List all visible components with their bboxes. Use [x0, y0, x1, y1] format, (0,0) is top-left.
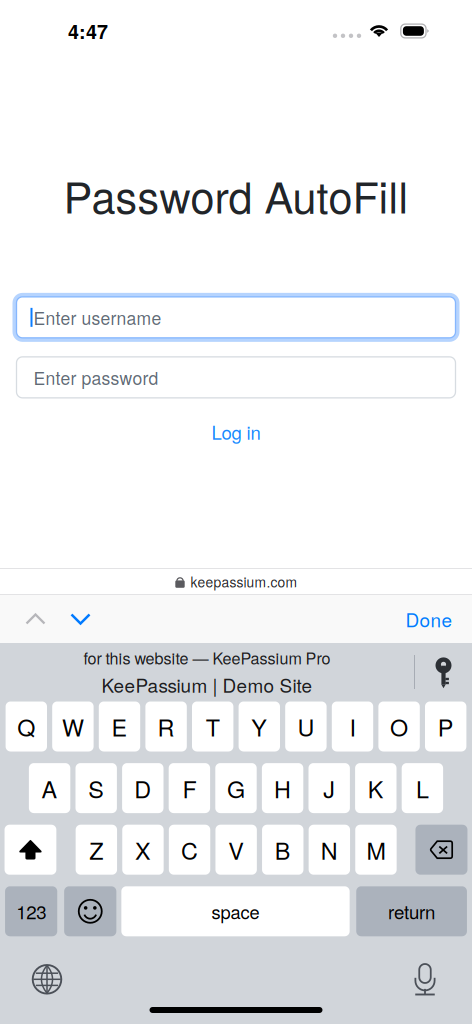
- staticText: U: [297, 710, 314, 743]
- staticText: Z: [89, 833, 103, 866]
- button[interactable]: L: [402, 763, 443, 813]
- button[interactable]: U: [285, 701, 327, 751]
- staticText: C: [181, 833, 198, 866]
- staticText: S: [88, 771, 104, 805]
- staticText: Enter password: [33, 365, 158, 390]
- button[interactable]: B: [262, 825, 303, 875]
- button[interactable]: P: [425, 701, 466, 751]
- staticText: H: [274, 771, 291, 805]
- staticText: T: [206, 710, 220, 743]
- button[interactable]: M: [355, 825, 397, 875]
- button[interactable]: Next keyboard: [16, 962, 78, 996]
- staticText: return: [388, 898, 435, 925]
- staticText: D: [134, 771, 151, 805]
- staticText: Enter username: [33, 305, 161, 330]
- button[interactable]: G: [215, 763, 257, 813]
- staticText: X: [135, 833, 151, 866]
- button[interactable]: 123: [5, 886, 57, 936]
- button[interactable]: Done: [396, 595, 462, 643]
- button[interactable]: Next field: [58, 595, 103, 643]
- staticText: L: [416, 771, 429, 805]
- staticText: J: [323, 771, 335, 805]
- staticText: M: [366, 833, 385, 866]
- staticText: Done: [405, 605, 452, 632]
- button[interactable]: Q: [6, 701, 47, 751]
- button[interactable]: A: [29, 763, 70, 813]
- staticText: Q: [17, 710, 35, 743]
- button[interactable]: K: [355, 763, 396, 813]
- button[interactable]: for this website — KeePassium Pro: [0, 643, 414, 701]
- staticText: keepassium.com: [190, 572, 297, 591]
- staticText: K: [368, 771, 384, 805]
- button[interactable]: X: [122, 825, 164, 875]
- button[interactable]: D: [122, 763, 163, 813]
- button[interactable]: Previous field: [13, 595, 58, 643]
- staticText: P: [438, 710, 454, 743]
- button[interactable]: Log in: [176, 418, 296, 446]
- button[interactable]: Enter password: [12, 353, 459, 402]
- staticText: R: [158, 710, 175, 743]
- staticText: B: [275, 833, 291, 866]
- staticText: KeePassium | Demo Site: [101, 671, 312, 698]
- staticText: Log in: [211, 419, 260, 445]
- button[interactable]: I: [332, 701, 373, 751]
- button[interactable]: O: [378, 701, 420, 751]
- button[interactable]: return: [356, 886, 467, 936]
- staticText: E: [111, 710, 127, 743]
- button[interactable]: Dictation: [394, 962, 456, 996]
- staticText: W: [62, 710, 84, 743]
- button[interactable]: Passwords: [415, 643, 472, 701]
- staticText: N: [321, 833, 338, 866]
- button[interactable]: Y: [239, 701, 280, 751]
- staticText: Password AutoFill: [63, 164, 408, 226]
- staticText: O: [390, 710, 408, 743]
- button[interactable]: Delete: [415, 825, 467, 875]
- staticText: G: [227, 771, 245, 805]
- button[interactable]: F: [169, 763, 210, 813]
- button[interactable]: H: [262, 763, 303, 813]
- button[interactable]: Z: [76, 825, 117, 875]
- button[interactable]: C: [169, 825, 210, 875]
- button[interactable]: V: [215, 825, 257, 875]
- staticText: A: [42, 771, 58, 805]
- staticText: V: [228, 833, 244, 866]
- button[interactable]: Emoji: [64, 886, 116, 936]
- button[interactable]: T: [192, 701, 233, 751]
- staticText: F: [182, 771, 196, 805]
- button[interactable]: R: [145, 701, 187, 751]
- staticText: Y: [251, 710, 267, 743]
- button[interactable]: space: [121, 886, 350, 936]
- staticText: space: [211, 898, 259, 924]
- button[interactable]: J: [308, 763, 350, 813]
- button[interactable]: W: [52, 701, 94, 751]
- staticText: 4:47: [68, 17, 108, 45]
- button[interactable]: Enter username: [12, 293, 459, 342]
- staticText: I: [349, 710, 355, 743]
- button[interactable]: E: [99, 701, 140, 751]
- staticText: 123: [16, 898, 46, 925]
- staticText: for this website — KeePassium Pro: [83, 646, 330, 669]
- button[interactable]: N: [309, 825, 350, 875]
- button[interactable]: S: [75, 763, 117, 813]
- button[interactable]: Shift: [4, 825, 56, 875]
